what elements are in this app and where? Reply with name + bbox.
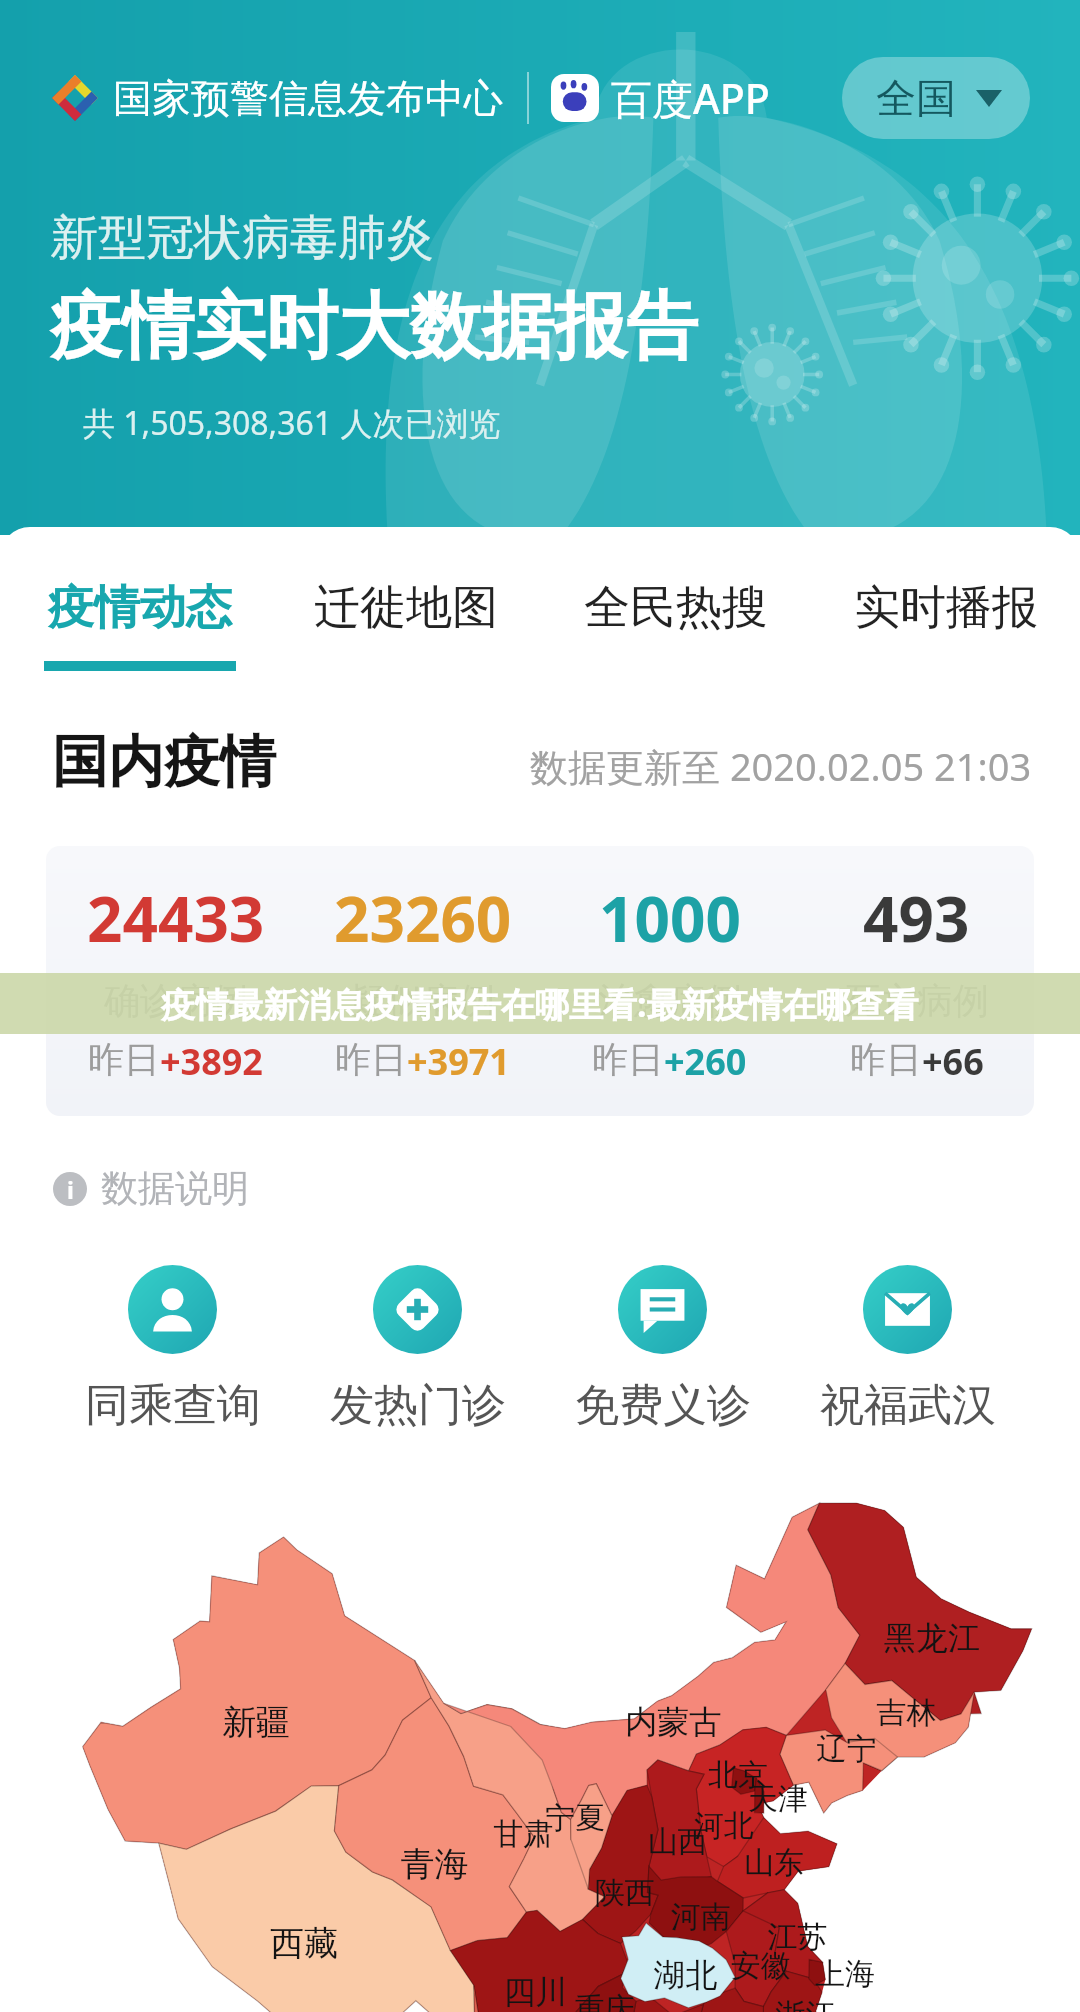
staticText: 疫情最新消息疫情报告在哪里看:最新疫情在哪查看: [161, 981, 919, 1027]
staticText: +66: [922, 1037, 984, 1086]
staticText: 免费义诊: [575, 1378, 751, 1433]
staticText: 昨日: [592, 1037, 664, 1082]
staticText: +3892: [160, 1037, 263, 1086]
staticText: 国家预警信息发布中心: [113, 74, 503, 123]
staticText: 数据说明: [101, 1165, 249, 1212]
staticText: 昨日: [850, 1037, 922, 1082]
staticText: 新型冠状病毒肺炎: [50, 208, 434, 268]
button[interactable]: 免费义诊: [540, 1265, 785, 1433]
button[interactable]: 全民热搜: [498, 579, 768, 661]
staticText: 确诊病例: [104, 978, 248, 1023]
staticText: 疫情实时大数据报告: [50, 282, 698, 373]
staticText: 全民热搜: [584, 579, 768, 637]
staticText: 发热门诊: [330, 1378, 506, 1433]
staticText: 死亡病例: [845, 978, 989, 1023]
staticText: 迁徙地图: [314, 579, 498, 637]
staticText: 数据更新至 2020.02.05 21:03: [530, 740, 1032, 792]
button[interactable]: 同乘查询: [50, 1265, 295, 1433]
button[interactable]: i: [53, 1165, 249, 1212]
button[interactable]: 发热门诊: [295, 1265, 540, 1433]
staticText: 疫情动态: [48, 579, 232, 637]
staticText: 493: [863, 876, 970, 960]
staticText: i: [67, 1174, 74, 1205]
staticText: 全国: [876, 73, 956, 123]
button[interactable]: 实时播报: [768, 579, 1038, 661]
staticText: +3971: [407, 1037, 510, 1086]
staticText: 24433: [87, 876, 265, 960]
staticText: 23260: [334, 876, 512, 960]
staticText: 实时播报: [854, 579, 1038, 637]
button[interactable]: 迁徙地图: [236, 579, 498, 661]
staticText: 1000: [599, 876, 741, 960]
staticText: +260: [664, 1037, 747, 1086]
button[interactable]: 全国: [842, 57, 1030, 139]
staticText: 昨日: [88, 1037, 160, 1082]
staticText: 百度APP: [611, 70, 770, 126]
staticText: 同乘查询: [85, 1378, 261, 1433]
staticText: 国内疫情: [52, 727, 276, 798]
staticText: 祝福武汉: [820, 1378, 996, 1433]
button[interactable]: 疫情动态: [0, 579, 236, 671]
other: National Warning Center: [48, 71, 102, 125]
staticText: 共 1,505,308,361 人次已浏览: [83, 401, 501, 445]
staticText: 疑似病例: [351, 978, 495, 1023]
button[interactable]: 祝福武汉: [785, 1265, 1030, 1433]
staticText: 昨日: [335, 1037, 407, 1082]
staticText: 治愈病例: [598, 978, 742, 1023]
